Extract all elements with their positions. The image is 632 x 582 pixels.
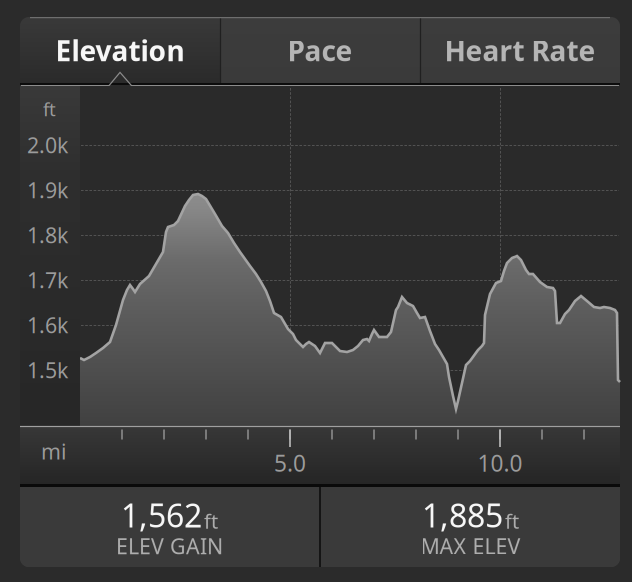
button[interactable]: 1,885 (321, 487, 620, 567)
button[interactable]: Heart Rate (420, 17, 620, 84)
staticText: 1.8k (27, 221, 68, 249)
staticText: 1.5k (27, 356, 68, 384)
staticText: Heart Rate (444, 32, 595, 69)
staticText: ft (204, 508, 218, 534)
staticText: Elevation (55, 32, 184, 69)
button[interactable]: Pace (220, 17, 420, 84)
staticText: 1.6k (27, 311, 68, 339)
staticText: 10.0 (477, 448, 522, 478)
staticText: ELEV GAIN (116, 532, 223, 560)
staticText: ft (43, 97, 56, 121)
staticText: Pace (287, 32, 352, 69)
button[interactable]: Elevation (20, 17, 220, 84)
staticText: 1,885 (422, 494, 503, 536)
button[interactable]: 1,562 (20, 487, 319, 567)
staticText: 2.0k (27, 131, 68, 159)
staticText: 1.9k (27, 176, 68, 204)
staticText: 1.7k (27, 266, 68, 294)
staticText: 1,562 (121, 494, 202, 536)
staticText: ft (505, 508, 519, 534)
staticText: MAX ELEV (420, 532, 520, 560)
staticText: mi (41, 437, 67, 465)
staticText: 5.0 (274, 448, 306, 478)
